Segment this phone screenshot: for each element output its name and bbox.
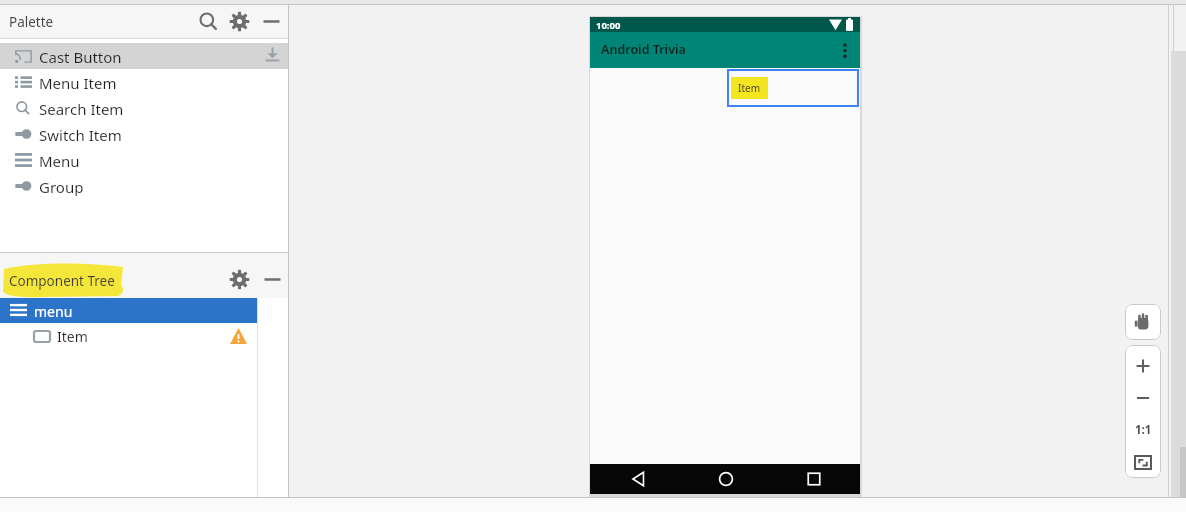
button[interactable]	[229, 11, 250, 32]
staticText: Search Item	[39, 99, 124, 118]
button[interactable]	[806, 471, 822, 487]
button[interactable]: Menu	[0, 147, 288, 173]
button[interactable]	[229, 269, 250, 290]
staticText: Menu Item	[39, 73, 117, 92]
button[interactable]: Item	[0, 323, 257, 349]
button[interactable]: Group	[0, 173, 288, 199]
staticText: Item	[57, 327, 88, 345]
button[interactable]: menu	[0, 298, 257, 323]
button[interactable]	[631, 471, 647, 487]
staticText: Component Tree	[9, 272, 115, 290]
staticText: Group	[39, 177, 84, 196]
button[interactable]	[1134, 455, 1152, 470]
button[interactable]: Switch Item	[0, 121, 288, 147]
button[interactable]	[1135, 390, 1151, 406]
staticText: Cast Button	[39, 47, 122, 66]
button[interactable]: Cast Button	[0, 43, 288, 69]
staticText: 10:00	[596, 19, 621, 31]
staticText: 1:1	[1135, 422, 1152, 437]
button[interactable]	[727, 69, 859, 107]
button[interactable]	[1125, 304, 1161, 340]
button[interactable]	[261, 11, 282, 32]
button[interactable]	[198, 11, 219, 32]
button[interactable]	[1135, 358, 1151, 374]
staticText: Palette	[9, 13, 54, 31]
button[interactable]	[718, 471, 734, 487]
staticText: Menu	[39, 151, 80, 170]
button[interactable]: Search Item	[0, 95, 288, 121]
button[interactable]: Menu Item	[0, 69, 288, 95]
button[interactable]: 1:1	[1130, 422, 1156, 437]
staticText: Item	[738, 81, 760, 95]
staticText: Android Trivia	[601, 41, 686, 58]
button[interactable]	[840, 43, 850, 58]
button[interactable]	[262, 269, 283, 290]
staticText: Switch Item	[39, 125, 122, 144]
staticText: menu	[34, 302, 73, 320]
